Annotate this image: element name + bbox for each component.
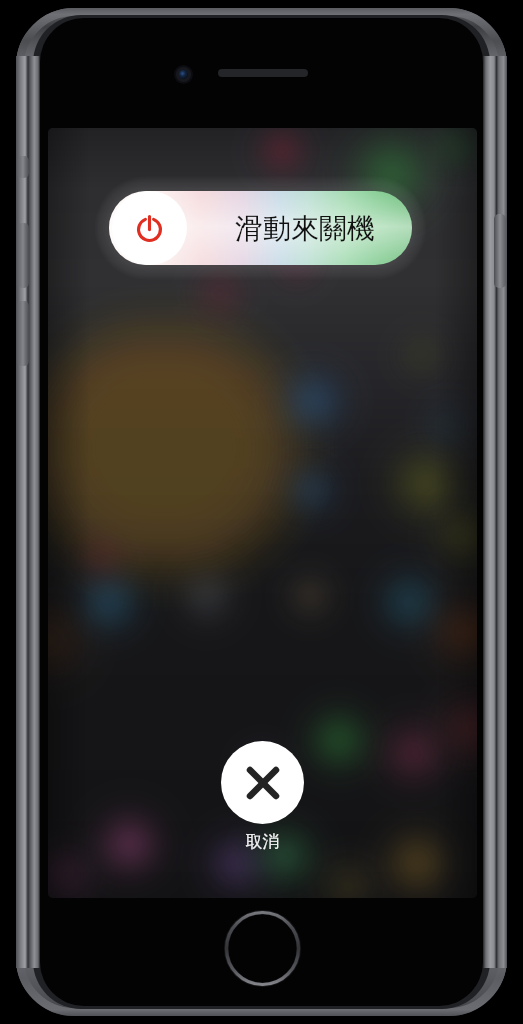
other: Power off <box>137 215 162 242</box>
button[interactable]: Power off <box>109 191 412 265</box>
staticText: 滑動來關機 <box>235 211 375 246</box>
button[interactable]: Cancel <box>221 741 304 852</box>
staticText: 取消 <box>221 831 304 852</box>
button[interactable]: Home <box>224 910 301 987</box>
other: Cancel <box>250 770 276 796</box>
